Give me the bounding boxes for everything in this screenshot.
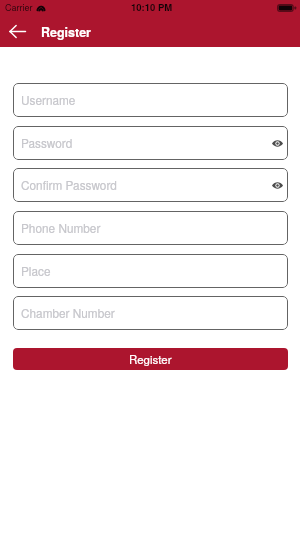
staticText: Password <box>21 134 73 151</box>
button[interactable]: Confirm Password <box>13 168 288 202</box>
staticText: Chamber Number <box>21 304 115 321</box>
button[interactable]: Username <box>13 83 288 117</box>
button[interactable]: Chamber Number <box>13 296 288 330</box>
staticText: 10:10 PM <box>131 0 173 14</box>
staticText: Register <box>41 23 91 41</box>
staticText: Confirm Password <box>21 176 117 193</box>
button[interactable]: Password <box>13 126 288 160</box>
button[interactable]: Show password <box>269 135 286 152</box>
staticText: Register <box>129 351 172 367</box>
button[interactable]: Place <box>13 254 288 288</box>
button[interactable]: Phone Number <box>13 211 288 245</box>
staticText: Place <box>21 262 51 279</box>
button[interactable]: Show password <box>269 177 286 194</box>
staticText: Phone Number <box>21 219 101 236</box>
staticText: Carrier <box>5 1 33 14</box>
staticText: Username <box>21 91 76 108</box>
button[interactable]: Back <box>0 19 34 44</box>
button[interactable]: Register <box>13 348 288 370</box>
